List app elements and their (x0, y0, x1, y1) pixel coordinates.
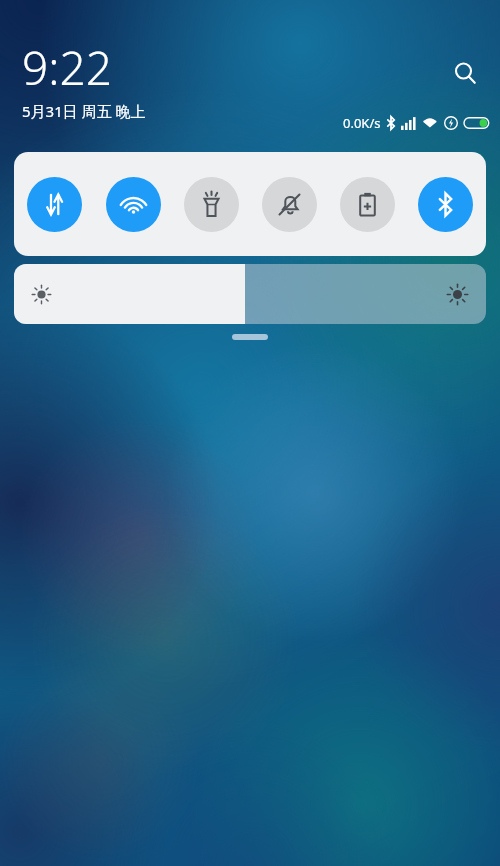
button[interactable]: Brightness (14, 264, 486, 324)
staticText: 0.0K/s (343, 114, 381, 132)
button[interactable]: Bluetooth (418, 177, 473, 232)
button[interactable]: Silent mode (262, 177, 317, 232)
staticText: 9:22 (22, 36, 113, 99)
button[interactable]: Flashlight (184, 177, 239, 232)
staticText: 5月31日 周五 晚上 (22, 101, 146, 121)
button[interactable]: Search (444, 52, 486, 94)
button[interactable]: Wi-Fi (106, 177, 161, 232)
button[interactable]: Screenshot (340, 177, 395, 232)
button[interactable]: Expand panel (232, 334, 268, 340)
button[interactable]: Mobile data (27, 177, 82, 232)
